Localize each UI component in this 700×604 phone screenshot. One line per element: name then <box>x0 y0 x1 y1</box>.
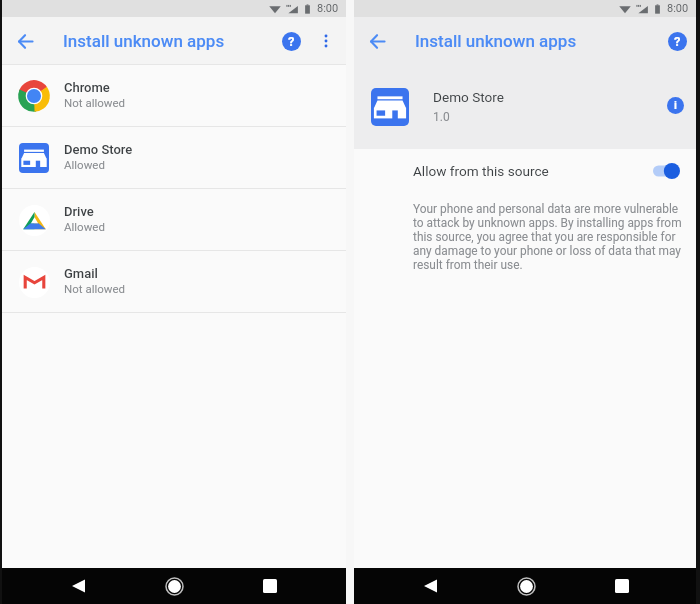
button[interactable]: Drive <box>2 189 346 250</box>
button[interactable]: Home <box>160 572 188 600</box>
staticText: Not allowed <box>64 96 126 109</box>
staticText: Install unknown apps <box>63 31 225 51</box>
staticText: Allowed <box>64 158 105 171</box>
button[interactable]: Back <box>13 29 37 53</box>
staticText: Chrome <box>64 80 110 95</box>
button[interactable]: Recent apps <box>256 572 284 600</box>
button[interactable]: Demo Store <box>2 127 346 188</box>
button[interactable]: Help <box>278 28 304 54</box>
staticText: Allowed <box>64 220 105 233</box>
staticText: 8:00 <box>667 2 689 15</box>
button[interactable]: Back <box>64 572 92 600</box>
staticText: Demo Store <box>433 89 505 105</box>
button[interactable]: Help <box>664 28 690 54</box>
button[interactable]: Back <box>365 29 389 53</box>
button[interactable]: App info <box>663 93 687 117</box>
staticText: ? <box>674 34 681 49</box>
button[interactable]: More options <box>313 28 339 54</box>
button[interactable]: Chrome <box>2 65 346 126</box>
button[interactable]: Home <box>512 572 540 600</box>
button[interactable]: Back <box>416 572 444 600</box>
button[interactable]: Gmail <box>2 251 346 312</box>
staticText: ? <box>288 34 295 49</box>
staticText: Drive <box>64 204 94 219</box>
staticText: Your phone and personal data are more vu… <box>413 202 684 272</box>
staticText: 8:00 <box>317 2 339 15</box>
staticText: Allow from this source <box>413 163 549 179</box>
staticText: Install unknown apps <box>415 31 577 51</box>
staticText: Demo Store <box>64 142 133 157</box>
staticText: Gmail <box>64 266 98 281</box>
staticText: Not allowed <box>64 282 126 295</box>
staticText: i <box>674 99 677 112</box>
staticText: 1.0 <box>433 110 450 124</box>
button[interactable]: Recent apps <box>608 572 636 600</box>
button[interactable]: Allow from this source <box>354 149 696 193</box>
